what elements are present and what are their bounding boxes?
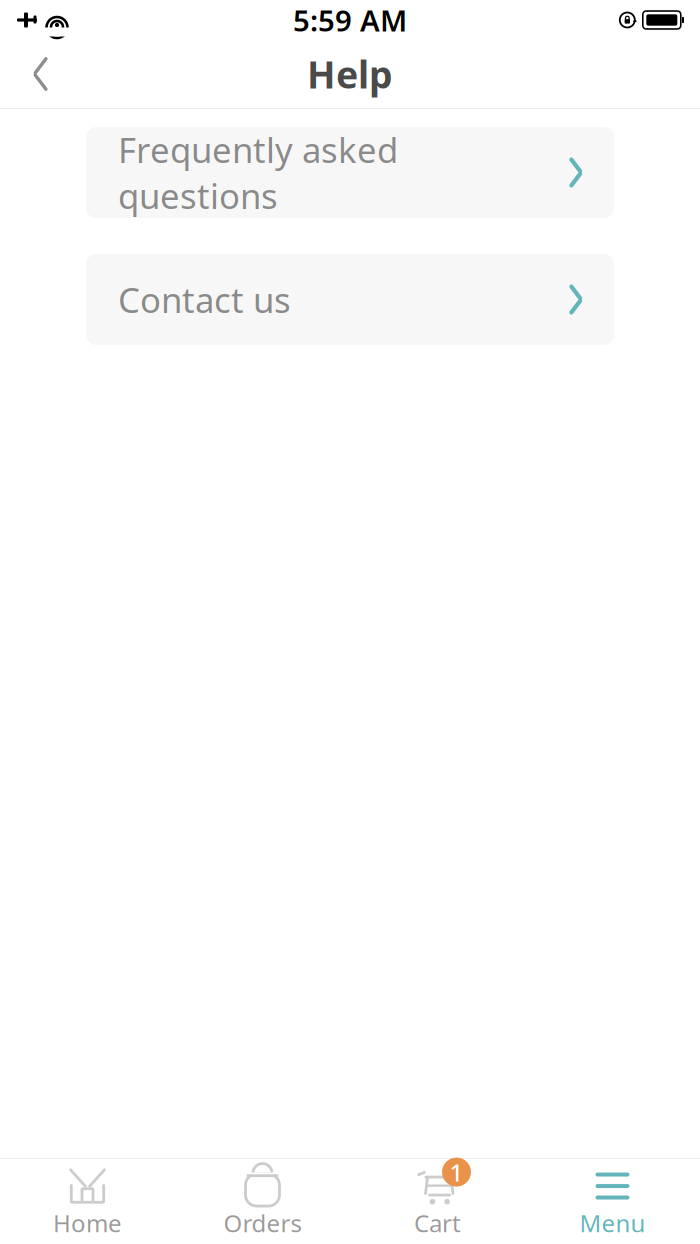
button[interactable]: Contact us — [86, 254, 614, 345]
button[interactable]: Frequently asked questions — [86, 127, 614, 218]
staticText: 5:59 AM — [293, 0, 407, 39]
staticText: Help — [307, 49, 393, 99]
staticText: Frequently asked questions — [118, 126, 398, 219]
staticText: Home — [53, 1207, 122, 1239]
staticText: Orders — [223, 1207, 301, 1239]
button[interactable]: Menu — [525, 1156, 700, 1244]
button[interactable]: Home — [0, 1156, 175, 1244]
button[interactable]: Orders — [175, 1156, 350, 1244]
button[interactable]: 1 — [350, 1156, 525, 1244]
staticText: 1 — [449, 1156, 463, 1188]
staticText: Contact us — [118, 276, 291, 322]
button[interactable]: Back — [16, 46, 72, 102]
staticText: Menu — [579, 1207, 645, 1239]
staticText: Cart — [414, 1207, 461, 1239]
